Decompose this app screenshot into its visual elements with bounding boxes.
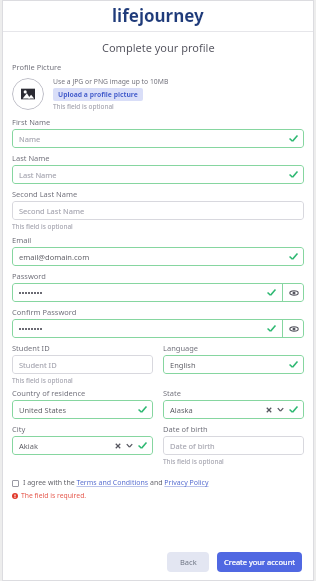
button[interactable]: Student ID: [12, 355, 153, 374]
staticText: This field is optional: [163, 457, 224, 466]
staticText: Back: [180, 557, 197, 567]
staticText: Email: [12, 235, 32, 245]
button[interactable]: Show password: [12, 283, 304, 302]
button[interactable]: Back: [167, 552, 209, 572]
button[interactable]: Show password: [283, 284, 304, 301]
staticText: Name: [19, 134, 41, 144]
button[interactable]: Last Name: [12, 165, 304, 184]
button[interactable]: Akiak: [12, 436, 153, 455]
staticText: First Name: [12, 117, 51, 127]
button[interactable]: Alaska: [163, 400, 304, 419]
button[interactable]: Name: [12, 129, 304, 148]
staticText: The field is required.: [21, 491, 87, 500]
staticText: Alaska: [170, 405, 193, 415]
staticText: Country of residence: [12, 388, 86, 398]
button[interactable]: Show password: [12, 319, 304, 338]
staticText: Password: [12, 271, 46, 281]
staticText: Complete your profile: [102, 40, 215, 55]
button[interactable]: Second Last Name: [12, 201, 304, 220]
staticText: Student ID: [12, 343, 50, 353]
staticText: This field is optional: [53, 102, 114, 111]
staticText: Akiak: [19, 441, 38, 451]
staticText: I agree with the Terms and Conditions an…: [23, 478, 209, 488]
staticText: Last Name: [19, 170, 57, 180]
staticText: Use a JPG or PNG image up to 10MB: [53, 77, 169, 86]
staticText: Second Last Name: [12, 189, 78, 199]
staticText: City: [12, 424, 26, 434]
staticText: Language: [163, 343, 199, 353]
staticText: Date of birth: [170, 441, 215, 451]
button[interactable]: email@domain.com: [12, 247, 304, 266]
staticText: United States: [19, 405, 67, 415]
staticText: State: [163, 388, 181, 398]
staticText: This field is optional: [12, 376, 73, 385]
button[interactable]: Create your account: [217, 552, 302, 572]
staticText: Confirm Password: [12, 307, 77, 317]
button[interactable]: English: [163, 355, 304, 374]
staticText: Date of birth: [163, 424, 208, 434]
button[interactable]: Profile picture: [12, 78, 44, 110]
staticText: Student ID: [19, 360, 57, 370]
staticText: Create your account: [224, 557, 295, 567]
button[interactable]: Date of birth: [163, 436, 304, 455]
staticText: Last Name: [12, 153, 50, 163]
staticText: lifejourney: [112, 4, 204, 27]
button[interactable]: United States: [12, 400, 153, 419]
staticText: This field is optional: [12, 222, 73, 231]
button[interactable]: Show password: [283, 320, 304, 337]
staticText: Second Last Name: [19, 206, 85, 216]
button[interactable]: I agree with the Terms and Conditions an…: [12, 478, 209, 488]
staticText: Upload a profile picture: [58, 90, 138, 99]
staticText: English: [170, 360, 196, 370]
staticText: email@domain.com: [19, 252, 90, 262]
button[interactable]: Upload a profile picture: [53, 88, 143, 101]
staticText: Profile Picture: [12, 62, 62, 72]
